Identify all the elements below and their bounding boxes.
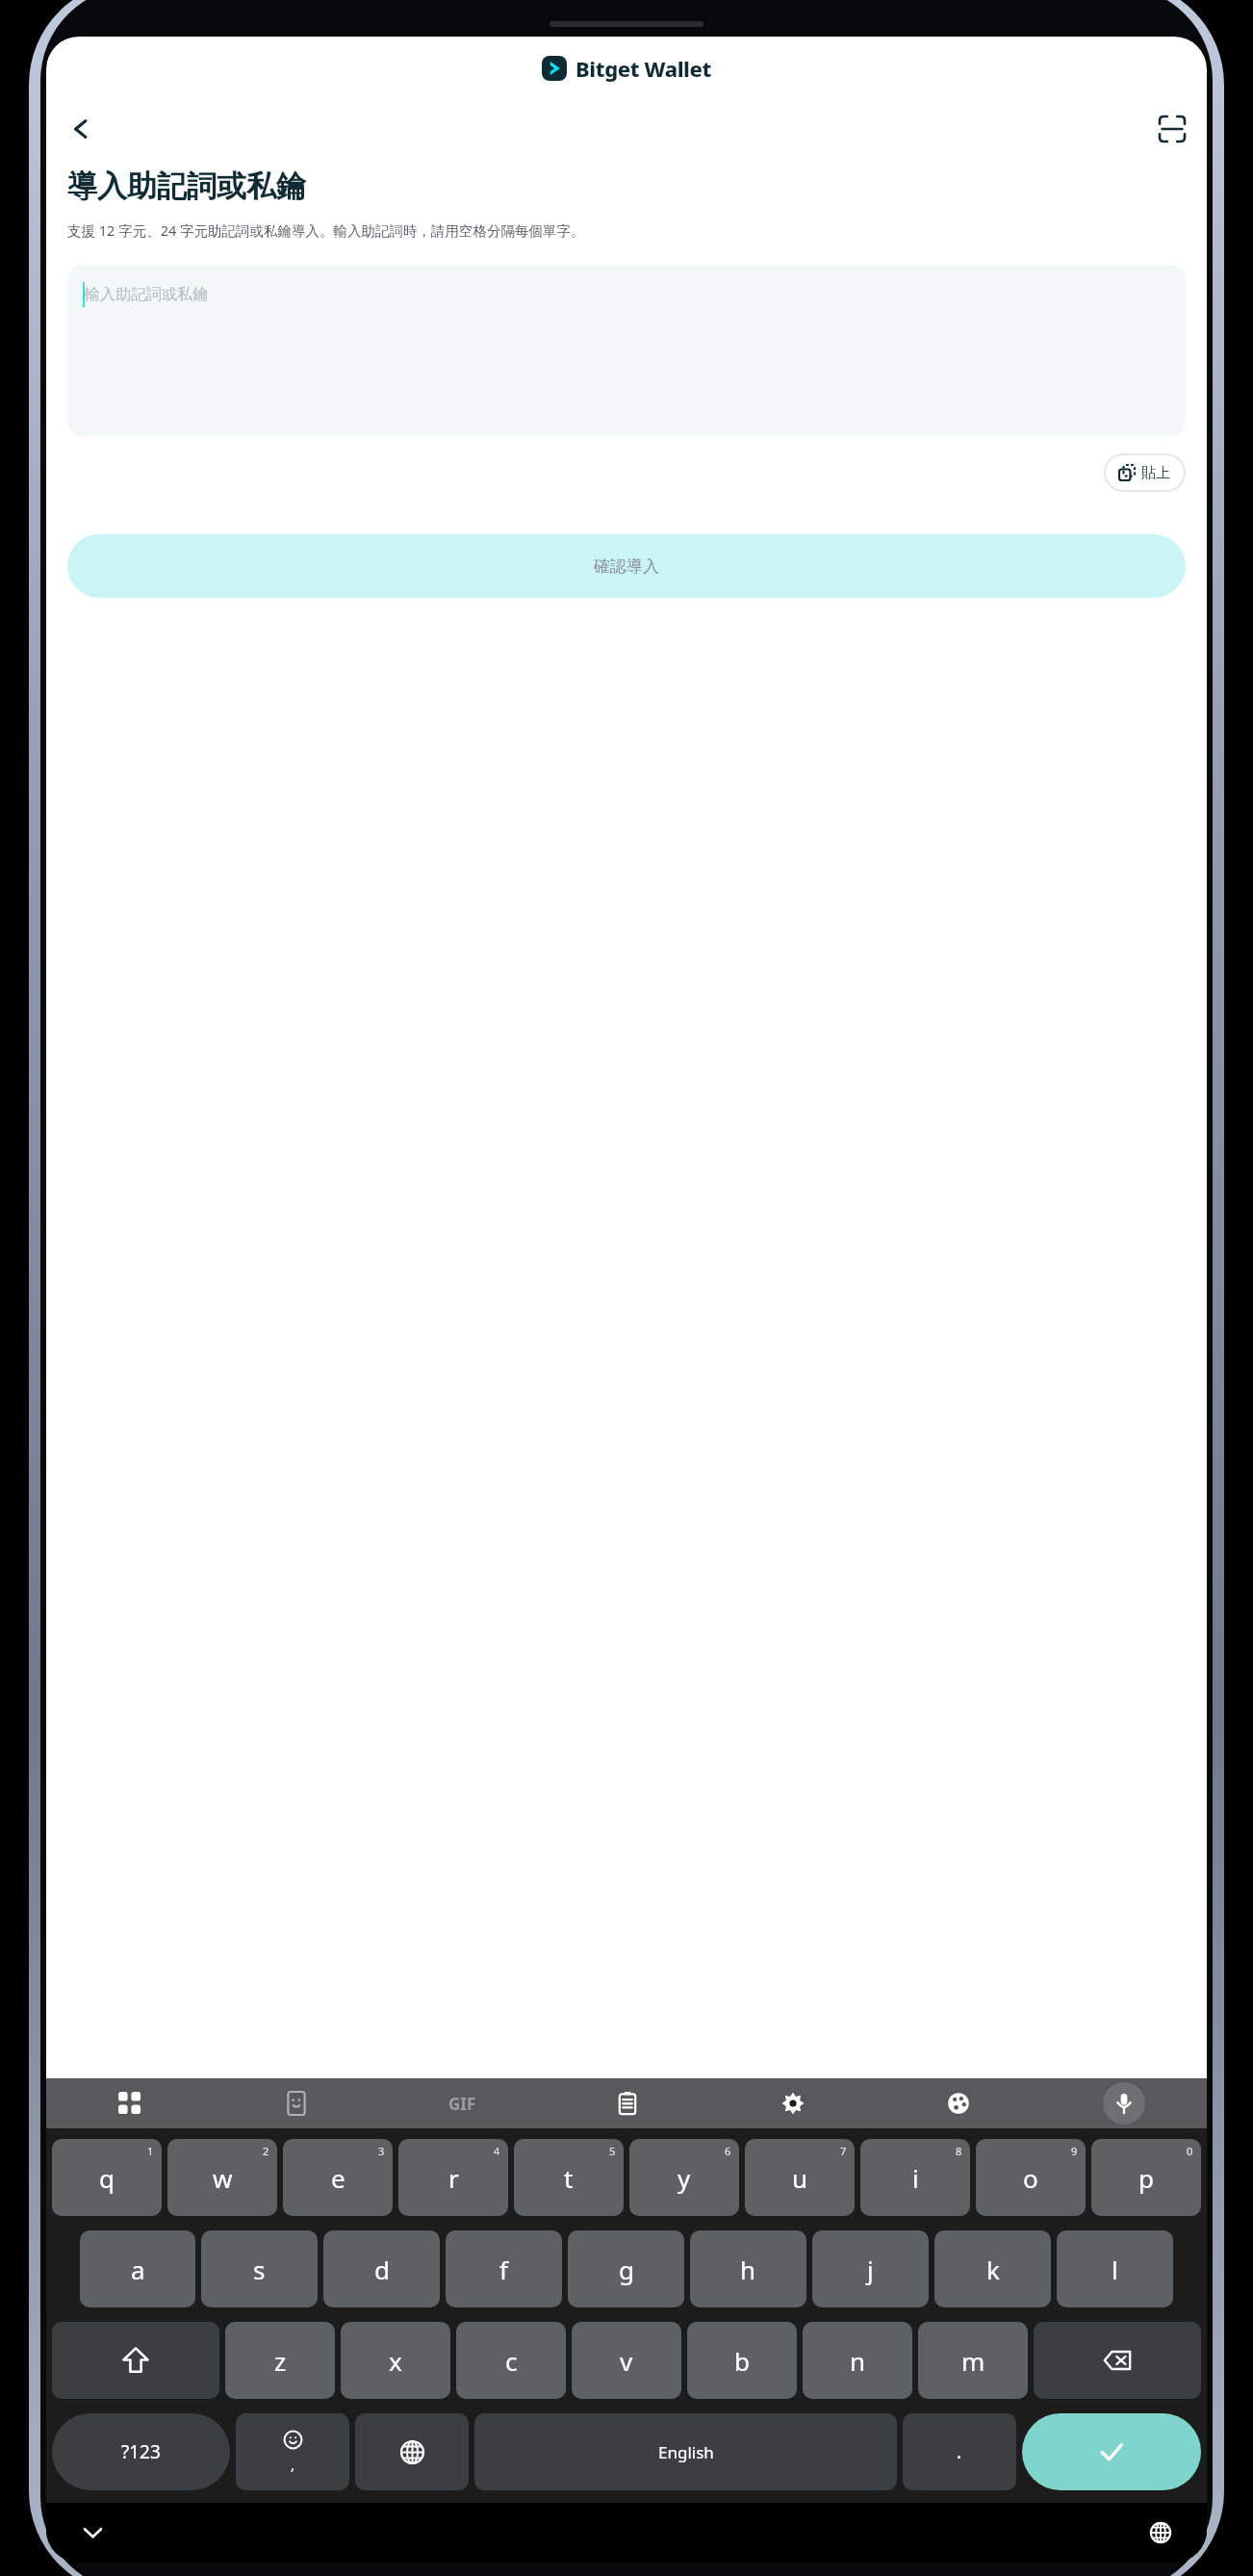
button[interactable]: b bbox=[687, 2322, 797, 2399]
staticText: j bbox=[867, 2253, 874, 2286]
staticText: o bbox=[1023, 2161, 1038, 2195]
staticText: 貼上 bbox=[1141, 464, 1170, 482]
staticText: . bbox=[957, 2439, 962, 2464]
button[interactable]: Settings bbox=[710, 2078, 876, 2128]
button[interactable]: t bbox=[514, 2139, 624, 2216]
button[interactable]: GIF bbox=[379, 2078, 545, 2128]
staticText: t bbox=[564, 2161, 574, 2195]
button[interactable]: h bbox=[690, 2230, 806, 2307]
button[interactable]: Voice input bbox=[1041, 2078, 1207, 2128]
button[interactable]: 輸入助記詞或私鑰 bbox=[67, 265, 1186, 436]
button[interactable]: Back bbox=[56, 104, 106, 154]
button[interactable]: e bbox=[283, 2139, 393, 2216]
staticText: u bbox=[792, 2161, 808, 2195]
button[interactable]: Shift bbox=[52, 2322, 219, 2399]
staticText: 7 bbox=[840, 2144, 847, 2158]
staticText: p bbox=[1138, 2161, 1154, 2195]
button[interactable]: 貼上 bbox=[1104, 453, 1186, 492]
button[interactable]: Change language bbox=[355, 2413, 469, 2490]
button[interactable]: Enter bbox=[1022, 2413, 1201, 2490]
button[interactable]: English bbox=[474, 2413, 897, 2490]
staticText: 0 bbox=[1187, 2144, 1193, 2158]
staticText: m bbox=[961, 2344, 985, 2378]
button[interactable]: x bbox=[341, 2322, 450, 2399]
button[interactable]: w bbox=[167, 2139, 277, 2216]
button[interactable]: Theme bbox=[876, 2078, 1041, 2128]
staticText: a bbox=[131, 2253, 145, 2286]
staticText: 4 bbox=[494, 2144, 500, 2158]
staticText: w bbox=[213, 2161, 233, 2195]
button[interactable]: 確認導入 bbox=[67, 534, 1186, 598]
staticText: x bbox=[389, 2344, 402, 2378]
staticText: c bbox=[505, 2344, 518, 2378]
button[interactable]: Apps bbox=[46, 2078, 213, 2128]
button[interactable]: q bbox=[52, 2139, 162, 2216]
button[interactable]: Emoji bbox=[236, 2413, 349, 2490]
button[interactable]: Stickers bbox=[213, 2078, 379, 2128]
staticText: l bbox=[1112, 2253, 1118, 2286]
button[interactable]: o bbox=[976, 2139, 1086, 2216]
button[interactable]: r bbox=[398, 2139, 508, 2216]
button[interactable]: d bbox=[323, 2230, 440, 2307]
staticText: b bbox=[734, 2344, 750, 2378]
button[interactable]: f bbox=[446, 2230, 562, 2307]
button[interactable]: c bbox=[456, 2322, 566, 2399]
staticText: 6 bbox=[725, 2144, 731, 2158]
button[interactable]: ?123 bbox=[52, 2413, 230, 2490]
staticText: i bbox=[912, 2161, 919, 2195]
staticText: 8 bbox=[956, 2144, 962, 2158]
staticText: y bbox=[678, 2161, 691, 2195]
button[interactable]: k bbox=[934, 2230, 1051, 2307]
button[interactable]: Hide keyboard bbox=[67, 2508, 117, 2558]
staticText: v bbox=[620, 2344, 633, 2378]
staticText: 2 bbox=[263, 2144, 269, 2158]
button[interactable]: i bbox=[860, 2139, 970, 2216]
staticText: d bbox=[374, 2253, 390, 2286]
button[interactable]: v bbox=[572, 2322, 681, 2399]
staticText: 確認導入 bbox=[594, 556, 659, 577]
button[interactable]: a bbox=[80, 2230, 195, 2307]
staticText: , bbox=[291, 2455, 295, 2474]
button[interactable]: g bbox=[568, 2230, 684, 2307]
button[interactable]: . bbox=[903, 2413, 1016, 2490]
button[interactable]: m bbox=[918, 2322, 1028, 2399]
staticText: ?123 bbox=[121, 2439, 161, 2464]
staticText: 支援 12 字元、24 字元助記詞或私鑰導入。輸入助記詞時，請用空格分隔每個單字… bbox=[67, 220, 585, 240]
staticText: 3 bbox=[378, 2144, 385, 2158]
button[interactable]: u bbox=[745, 2139, 855, 2216]
staticText: e bbox=[331, 2161, 345, 2195]
staticText: h bbox=[740, 2253, 756, 2286]
staticText: 1 bbox=[147, 2144, 154, 2158]
staticText: 9 bbox=[1071, 2144, 1078, 2158]
staticText: q bbox=[99, 2161, 115, 2195]
staticText: r bbox=[448, 2161, 459, 2195]
staticText: 輸入助記詞或私鑰 bbox=[85, 285, 208, 304]
button[interactable]: n bbox=[803, 2322, 912, 2399]
staticText: 導入助記詞或私鑰 bbox=[67, 167, 306, 205]
staticText: g bbox=[619, 2253, 634, 2286]
staticText: GIF bbox=[448, 2093, 476, 2115]
button[interactable]: y bbox=[629, 2139, 739, 2216]
staticText: n bbox=[850, 2344, 866, 2378]
button[interactable]: Switch input language bbox=[1136, 2508, 1186, 2558]
staticText: 5 bbox=[609, 2144, 616, 2158]
button[interactable]: Clipboard bbox=[545, 2078, 710, 2128]
button[interactable]: Scan bbox=[1147, 104, 1197, 154]
button[interactable]: p bbox=[1091, 2139, 1201, 2216]
staticText: z bbox=[274, 2344, 287, 2378]
staticText: s bbox=[253, 2253, 266, 2286]
button[interactable]: s bbox=[201, 2230, 318, 2307]
button[interactable]: Backspace bbox=[1034, 2322, 1201, 2399]
button[interactable]: j bbox=[812, 2230, 929, 2307]
button[interactable]: z bbox=[225, 2322, 335, 2399]
button[interactable]: l bbox=[1057, 2230, 1173, 2307]
staticText: f bbox=[499, 2253, 508, 2286]
staticText: k bbox=[986, 2253, 1000, 2286]
staticText: Bitget Wallet bbox=[575, 54, 711, 83]
staticText: English bbox=[658, 2441, 714, 2463]
